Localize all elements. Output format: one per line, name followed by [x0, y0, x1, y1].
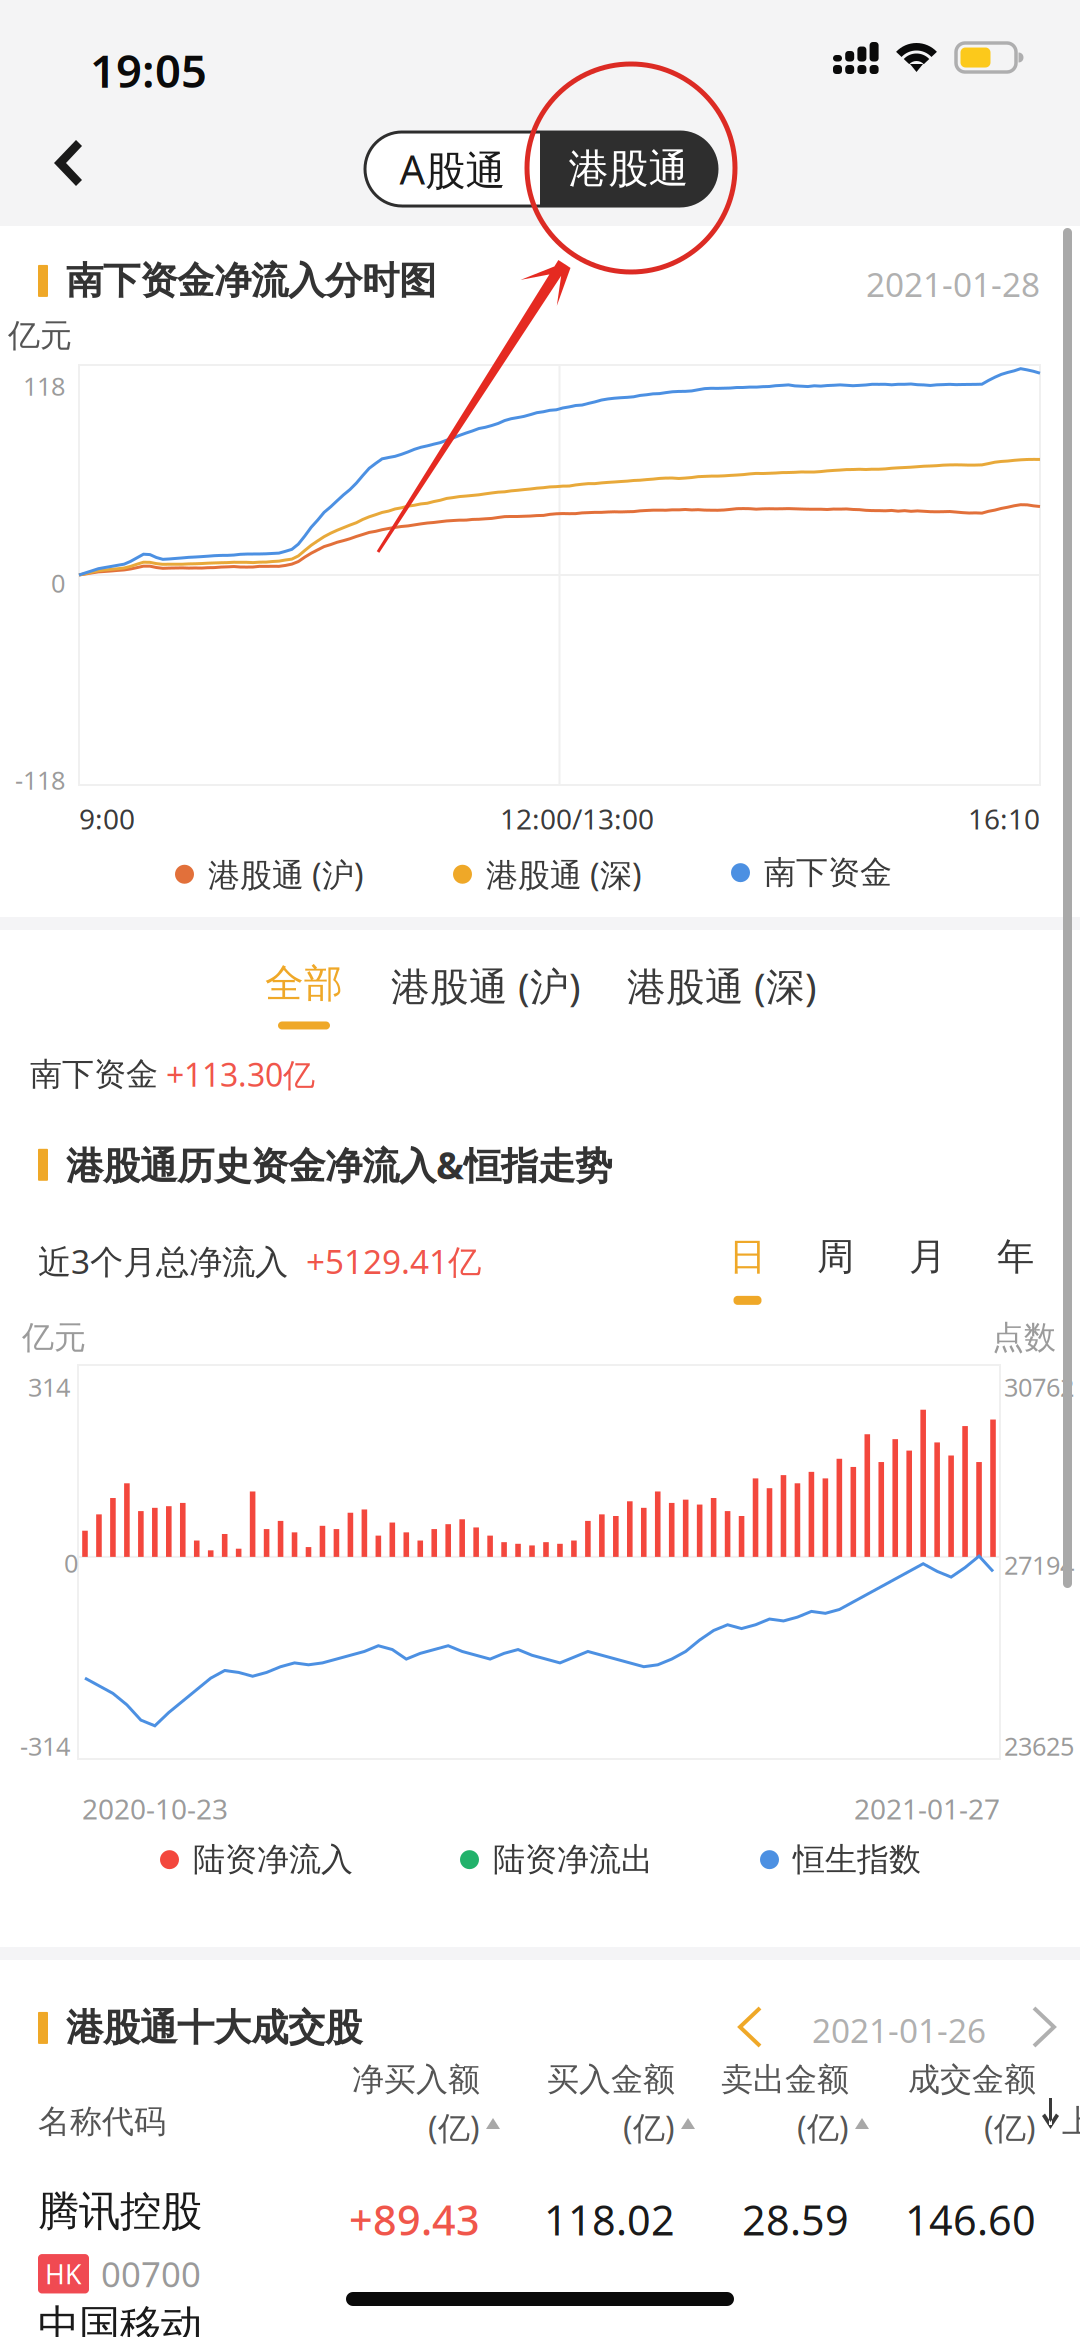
staticText: 全部 — [265, 960, 343, 1007]
staticText: 0 — [64, 1546, 78, 1580]
staticText: 腾讯控股 — [38, 2186, 202, 2237]
staticText: 2020-10-23 — [82, 1790, 228, 1827]
button[interactable]: 全部 — [264, 960, 344, 1029]
staticText: 卖出金额 — [721, 2060, 849, 2099]
button[interactable]: 月 — [909, 1234, 959, 1305]
staticText: A股通 — [399, 142, 505, 196]
staticText: 28.59 — [742, 2192, 849, 2247]
staticText: 成交金额 — [908, 2060, 1036, 2099]
staticText: 00700 — [101, 2251, 201, 2297]
staticText: (亿) — [428, 2106, 480, 2148]
staticText: 16:10 — [968, 800, 1040, 837]
staticText: -118 — [15, 763, 65, 797]
staticText: 19:05 — [90, 40, 207, 100]
button[interactable]: 港股通 (沪) — [393, 960, 579, 1033]
staticText: +113.30亿 — [158, 1053, 315, 1095]
staticText: 日 — [729, 1234, 766, 1280]
staticText: 净买入额 — [352, 2060, 480, 2099]
staticText: 港股通 (沪) — [391, 960, 581, 1011]
staticText: 南下资金 — [30, 1055, 158, 1094]
staticText: 2021-01-28 — [866, 262, 1040, 306]
staticText: 146.60 — [905, 2192, 1036, 2247]
staticText: 年 — [997, 1234, 1034, 1280]
staticText: +5129.41亿 — [288, 1239, 481, 1283]
staticText: 买入金额 — [547, 2060, 675, 2099]
button[interactable]: Next day — [1020, 1994, 1068, 2060]
staticText: 118 — [23, 369, 65, 403]
staticText: 0 — [51, 566, 65, 600]
button[interactable]: 年 — [997, 1234, 1047, 1305]
staticText: 23625 — [1004, 1729, 1074, 1763]
staticText: 27194 — [1004, 1548, 1074, 1582]
staticText: 亿元 — [22, 1318, 86, 1357]
staticText: (亿) — [797, 2106, 849, 2148]
staticText: 30762 — [1004, 1370, 1074, 1404]
staticText: (亿) — [984, 2106, 1036, 2148]
button[interactable]: 周 — [817, 1234, 867, 1305]
staticText: 名称代码 — [38, 2102, 166, 2141]
staticText: 12:00/13:00 — [500, 800, 654, 837]
staticText: 港股通历史资金净流入&恒指走势 — [66, 1140, 612, 1190]
button[interactable]: 港股通 — [540, 132, 717, 206]
staticText: 月 — [909, 1234, 946, 1280]
staticText: 2021-01-27 — [854, 1790, 1000, 1827]
staticText: 陆资净流出 — [493, 1840, 653, 1879]
staticText: +89.43 — [349, 2192, 480, 2247]
staticText: 上 — [1062, 2102, 1080, 2141]
button[interactable]: A股通 — [365, 132, 540, 206]
staticText: 恒生指数 — [793, 1840, 921, 1879]
button[interactable]: 港股通 (深) — [629, 960, 815, 1033]
staticText: -314 — [20, 1729, 70, 1763]
staticText: 港股通十大成交股 — [66, 2005, 362, 2051]
staticText: 9:00 — [79, 800, 135, 837]
button[interactable]: 日 — [729, 1234, 779, 1305]
staticText: 南下资金 — [764, 853, 892, 892]
staticText: 周 — [817, 1234, 854, 1280]
staticText: 314 — [28, 1370, 70, 1404]
staticText: 118.02 — [544, 2192, 675, 2247]
staticText: (亿) — [623, 2106, 675, 2148]
staticText: 港股通 (深) — [486, 853, 642, 895]
staticText: 港股通 (沪) — [208, 853, 364, 895]
staticText: 中国移动 — [38, 2300, 202, 2337]
staticText: 陆资净流入 — [193, 1840, 353, 1879]
staticText: 2021-01-26 — [812, 2008, 986, 2052]
staticText: HK — [45, 2256, 82, 2291]
staticText: 点数 — [992, 1318, 1056, 1357]
staticText: 港股通 (深) — [627, 960, 817, 1011]
staticText: 亿元 — [8, 316, 72, 355]
staticText: 南下资金净流入分时图 — [66, 258, 436, 304]
button[interactable]: Back — [24, 122, 112, 204]
staticText: 近3个月总净流入 — [38, 1239, 288, 1283]
staticText: 港股通 — [568, 144, 688, 193]
button[interactable]: Previous day — [726, 1994, 774, 2060]
